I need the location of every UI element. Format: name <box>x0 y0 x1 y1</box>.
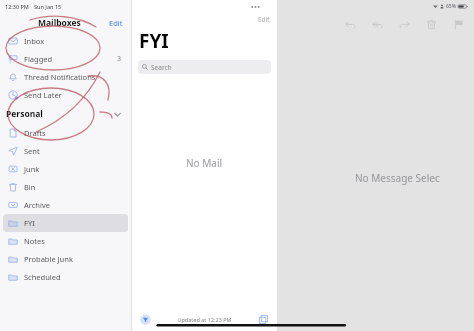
staticText: Inbox <box>24 36 45 46</box>
staticText: Probable Junk <box>24 254 73 264</box>
staticText: Thread Notifications <box>24 72 96 82</box>
button[interactable]: Inbox <box>3 32 128 50</box>
button[interactable]: Flagged <box>3 50 128 68</box>
button[interactable]: Drafts <box>3 124 128 142</box>
button[interactable]: Search <box>138 60 271 74</box>
staticText: Edit <box>109 18 123 28</box>
button[interactable]: Junk <box>3 160 128 178</box>
staticText: Archive <box>24 200 50 210</box>
button[interactable]: Send Later <box>3 86 128 104</box>
button[interactable]: Filter <box>139 313 152 326</box>
staticText: FYI <box>24 218 35 228</box>
button[interactable]: Reply <box>343 17 358 32</box>
button[interactable]: Scheduled <box>3 268 128 286</box>
button[interactable]: Delete <box>424 17 439 32</box>
staticText: Flagged <box>24 54 53 64</box>
button[interactable]: FYI <box>3 214 128 232</box>
staticText: Scheduled <box>24 272 61 282</box>
staticText: 3 <box>117 54 122 64</box>
button[interactable]: Probable Junk <box>3 250 128 268</box>
button[interactable]: Forward <box>397 17 412 32</box>
button[interactable]: Edit <box>257 14 271 25</box>
staticText: 12:30 PM <box>5 3 29 10</box>
staticText: Notes <box>24 236 45 246</box>
button[interactable]: Archive <box>3 196 128 214</box>
staticText: Sent <box>24 146 40 156</box>
staticText: Junk <box>24 164 40 174</box>
staticText: Sun Jan 15 <box>34 3 62 10</box>
button[interactable]: Sent <box>3 142 128 160</box>
staticText: Drafts <box>24 128 46 138</box>
staticText: FYI <box>139 28 169 54</box>
button[interactable]: More options <box>247 1 263 13</box>
button[interactable]: Thread Notifications <box>3 68 128 86</box>
staticText: Mailboxes <box>38 17 81 29</box>
button[interactable]: Reply All <box>370 17 385 32</box>
staticText: No Message Selec <box>355 171 440 185</box>
staticText: Search <box>151 63 172 72</box>
button[interactable]: Notes <box>3 232 128 250</box>
staticText: Bin <box>24 182 36 192</box>
button[interactable]: Flag <box>451 17 466 32</box>
button[interactable]: Compose <box>257 313 270 326</box>
staticText: Personal <box>6 108 43 120</box>
button[interactable]: Collapse Personal <box>111 108 123 120</box>
staticText: Updated at 12:23 PM <box>177 316 232 323</box>
staticText: No Mail <box>186 156 223 170</box>
button[interactable]: Bin <box>3 178 128 196</box>
button[interactable]: Edit <box>107 16 125 30</box>
staticText: 65% <box>446 3 456 10</box>
staticText: Send Later <box>24 90 62 100</box>
staticText: Edit <box>258 15 270 24</box>
